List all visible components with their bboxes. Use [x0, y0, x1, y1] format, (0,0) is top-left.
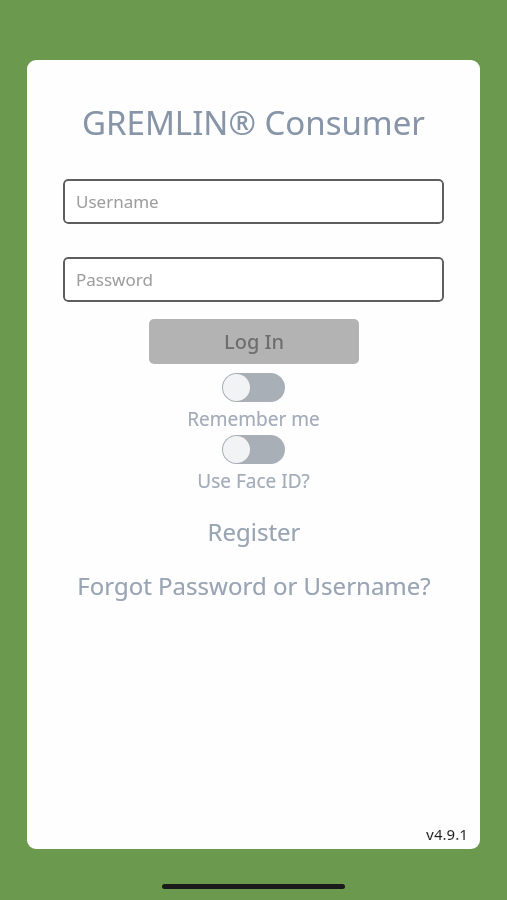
staticText: Password [76, 268, 153, 291]
button[interactable]: Remember me toggle [222, 373, 285, 402]
staticText: GREMLIN® Consumer [47, 100, 460, 145]
staticText: Username [76, 190, 159, 213]
staticText: v4.9.1 [426, 824, 468, 844]
button[interactable]: Use Face ID? [27, 468, 480, 494]
button[interactable]: Log In [149, 319, 359, 364]
button[interactable]: Use Face ID toggle [222, 435, 285, 464]
staticText: Register [207, 515, 301, 548]
staticText: Forgot Password or Username? [77, 569, 431, 602]
button[interactable]: Username [63, 179, 444, 224]
button[interactable]: Password [63, 257, 444, 302]
staticText: Remember me [187, 406, 320, 432]
staticText: Use Face ID? [197, 468, 310, 494]
button[interactable]: Register [27, 515, 480, 548]
button[interactable]: Forgot Password or Username? [27, 569, 480, 602]
staticText: Log In [224, 328, 285, 355]
button[interactable]: Remember me [27, 406, 480, 432]
